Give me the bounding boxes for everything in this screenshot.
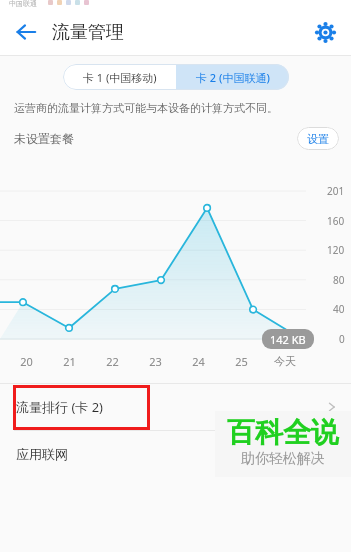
staticText: 24 [192, 354, 205, 369]
staticText: 0 [339, 332, 345, 346]
staticText: 160 [327, 214, 345, 228]
button[interactable]: 设置 [297, 127, 339, 150]
staticText: 120 [327, 243, 345, 257]
staticText: 201 [327, 184, 345, 198]
staticText: 助你轻松解决 [241, 450, 325, 468]
staticText: 卡 2 (中国联通) [196, 70, 270, 85]
staticText: 中国联通 [9, 0, 37, 8]
staticText: 百科全说 [227, 415, 339, 450]
staticText: 应用联网 [16, 446, 68, 462]
button[interactable]: 卡 2 (中国联通) [176, 64, 289, 90]
staticText: 今天 [274, 354, 296, 368]
staticText: 运营商的流量计算方式可能与本设备的计算方式不同。 [14, 101, 337, 115]
staticText: 21 [63, 354, 76, 369]
staticText: 未设置套餐 [14, 131, 74, 146]
staticText: 80 [333, 273, 345, 287]
button[interactable]: 应用联网 [0, 431, 351, 477]
staticText: 流量排行 (卡 2) [16, 398, 103, 416]
button[interactable]: 流量排行 (卡 2) [0, 384, 351, 430]
staticText: 设置 [307, 132, 329, 146]
staticText: 142 KB [270, 332, 306, 347]
button[interactable]: 卡 1 (中国移动) [63, 64, 176, 90]
staticText: 22 [106, 354, 119, 369]
staticText: 流量管理 [52, 21, 124, 44]
staticText: 40 [333, 302, 345, 316]
staticText: 25 [235, 354, 248, 369]
button[interactable]: Settings [308, 15, 342, 49]
staticText: 23 [149, 354, 162, 369]
staticText: 20 [20, 354, 33, 369]
staticText: 卡 1 (中国移动) [83, 70, 157, 85]
button[interactable]: Back [8, 14, 44, 50]
